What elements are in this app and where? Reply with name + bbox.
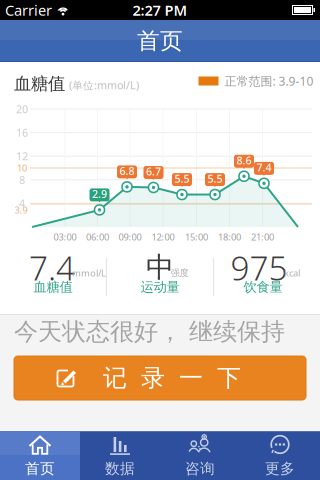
staticText: 中 bbox=[146, 250, 174, 285]
staticText: 10 bbox=[17, 162, 27, 174]
staticText: 16 bbox=[16, 125, 28, 140]
staticText: 12 bbox=[16, 149, 28, 163]
staticText: 饮食量 bbox=[243, 279, 282, 295]
staticText: 03:00 bbox=[53, 231, 76, 243]
button[interactable]: 记 录 一 下 bbox=[14, 356, 306, 400]
staticText: (单位:mmol/L) bbox=[69, 78, 139, 92]
staticText: 09:00 bbox=[118, 231, 141, 243]
staticText: 18:00 bbox=[218, 231, 241, 243]
staticText: 21:00 bbox=[251, 231, 274, 243]
staticText: 12:00 bbox=[151, 231, 174, 243]
staticText: 今天状态很好， 继续保持 bbox=[14, 317, 285, 346]
button[interactable]: 更多 bbox=[240, 431, 320, 480]
staticText: Carrier bbox=[5, 0, 52, 20]
staticText: 15:00 bbox=[185, 231, 208, 243]
staticText: 06:00 bbox=[86, 231, 109, 243]
staticText: kcal bbox=[284, 267, 300, 279]
staticText: 7.4 bbox=[256, 160, 271, 174]
staticText: 血糖值 bbox=[14, 73, 65, 94]
staticText: 运动量 bbox=[140, 279, 179, 295]
staticText: 4 bbox=[19, 196, 25, 210]
staticText: 5.5 bbox=[207, 171, 222, 186]
staticText: 5.5 bbox=[174, 171, 189, 186]
staticText: mmol/L bbox=[72, 267, 106, 279]
staticText: 咨询 bbox=[185, 459, 215, 477]
staticText: 8 bbox=[19, 173, 25, 187]
staticText: 首页 bbox=[137, 27, 183, 55]
staticText: 首页 bbox=[25, 459, 55, 477]
staticText: 8.6 bbox=[236, 153, 251, 167]
staticText: 记 录 一 下 bbox=[103, 363, 241, 393]
staticText: 3.9 bbox=[14, 204, 27, 216]
button[interactable]: 数据 bbox=[80, 431, 160, 480]
staticText: 975 bbox=[230, 245, 287, 290]
staticText: 数据 bbox=[105, 459, 135, 477]
staticText: 强度 bbox=[170, 267, 188, 279]
staticText: 7.4 bbox=[29, 245, 75, 290]
staticText: 6.7 bbox=[146, 164, 161, 179]
button[interactable]: 首页 bbox=[0, 431, 80, 480]
staticText: 2:27 PM bbox=[132, 0, 187, 20]
button[interactable]: 咨询 bbox=[160, 431, 240, 480]
staticText: 血糖值 bbox=[33, 279, 72, 295]
staticText: 6.8 bbox=[119, 164, 134, 178]
staticText: 2.9 bbox=[92, 187, 107, 201]
staticText: 20 bbox=[16, 102, 28, 116]
staticText: 更多 bbox=[265, 459, 295, 477]
staticText: 正常范围: 3.9-10 bbox=[224, 73, 313, 89]
